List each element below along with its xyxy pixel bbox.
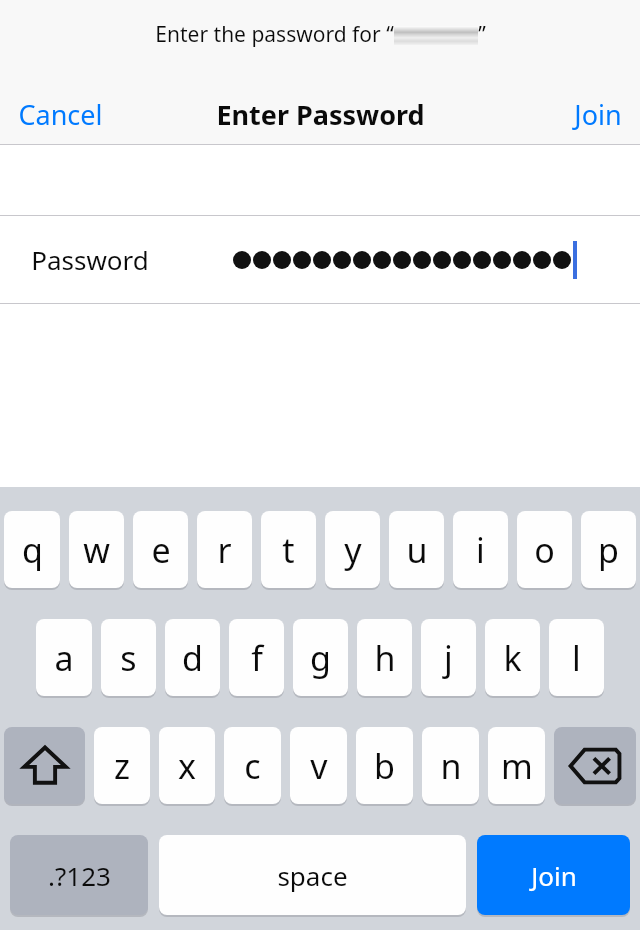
staticText: space	[277, 858, 348, 893]
staticText: c	[244, 743, 261, 789]
button[interactable]: Join	[477, 835, 630, 915]
button[interactable]: u	[389, 511, 444, 588]
button[interactable]: x	[159, 727, 215, 804]
button[interactable]: space	[159, 835, 466, 915]
staticText: Enter Password	[216, 96, 425, 133]
staticText: o	[534, 527, 555, 573]
button[interactable]: e	[133, 511, 188, 588]
button[interactable]: Backspace	[554, 727, 636, 804]
staticText: k	[503, 635, 522, 681]
staticText: l	[572, 635, 581, 681]
button[interactable]: l	[549, 619, 604, 696]
button[interactable]: s	[101, 619, 156, 696]
staticText: u	[406, 527, 428, 573]
button[interactable]: q	[4, 511, 60, 588]
button[interactable]: i	[453, 511, 508, 588]
staticText: z	[114, 743, 130, 789]
button[interactable]: a	[36, 619, 92, 696]
staticText: Join	[574, 96, 622, 133]
staticText: a	[54, 635, 74, 681]
staticText: x	[178, 743, 196, 789]
staticText: n	[440, 743, 462, 789]
staticText: s	[120, 635, 137, 681]
staticText: ”	[478, 20, 486, 49]
staticText: i	[476, 527, 485, 573]
button[interactable]: j	[421, 619, 476, 696]
staticText: g	[310, 635, 331, 681]
staticText: t	[282, 527, 295, 573]
button[interactable]: t	[261, 511, 316, 588]
button[interactable]: h	[357, 619, 412, 696]
button[interactable]: b	[356, 727, 413, 804]
button[interactable]: g	[293, 619, 348, 696]
button[interactable]: z	[94, 727, 150, 804]
button[interactable]: y	[325, 511, 380, 588]
button[interactable]: p	[581, 511, 636, 588]
button[interactable]: Join	[556, 88, 640, 141]
button[interactable]: v	[290, 727, 347, 804]
button[interactable]: r	[197, 511, 252, 588]
staticText: h	[374, 635, 396, 681]
button[interactable]: Password	[0, 216, 640, 303]
button[interactable]: .?123	[10, 835, 148, 915]
button[interactable]: w	[69, 511, 124, 588]
staticText: j	[444, 635, 453, 681]
staticText: Password	[31, 242, 149, 277]
button[interactable]: Cancel	[0, 88, 121, 141]
staticText: r	[217, 527, 232, 573]
staticText: y	[344, 527, 362, 573]
staticText: Cancel	[18, 96, 103, 133]
staticText: e	[151, 527, 171, 573]
button[interactable]: n	[422, 727, 479, 804]
staticText: d	[182, 635, 203, 681]
staticText: p	[598, 527, 619, 573]
staticText: m	[501, 743, 533, 789]
button[interactable]: m	[488, 727, 545, 804]
staticText: q	[22, 527, 43, 573]
button[interactable]: k	[485, 619, 540, 696]
button[interactable]: o	[517, 511, 572, 588]
staticText: w	[83, 527, 110, 573]
staticText: v	[310, 743, 328, 789]
button[interactable]: c	[224, 727, 281, 804]
staticText: Enter the password for “	[155, 20, 394, 49]
staticText: Join	[531, 858, 577, 893]
button[interactable]: f	[229, 619, 284, 696]
button[interactable]: Shift	[4, 727, 85, 804]
staticText: .?123	[48, 858, 111, 893]
staticText: b	[374, 743, 395, 789]
button[interactable]: d	[165, 619, 220, 696]
staticText: f	[251, 635, 263, 681]
